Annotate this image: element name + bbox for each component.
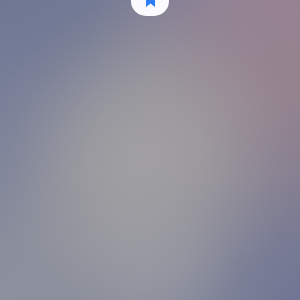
- button[interactable]: Bookmark: [131, 0, 169, 16]
